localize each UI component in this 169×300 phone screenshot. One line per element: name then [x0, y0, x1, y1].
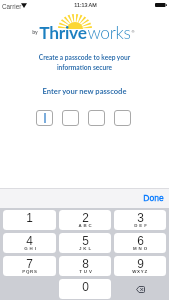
staticText: DEF: [134, 223, 149, 228]
staticText: ®: [131, 29, 135, 34]
staticText: Carrier: [2, 3, 22, 10]
staticText: 2: [82, 211, 89, 224]
staticText: works: [87, 22, 131, 43]
button[interactable]: 9: [114, 256, 166, 276]
staticText: Thrive: [39, 22, 87, 43]
button[interactable]: 2: [59, 210, 111, 230]
button[interactable]: Delete: [114, 279, 166, 299]
staticText: WXYZ: [132, 269, 148, 274]
staticText: PQRS: [22, 269, 38, 274]
staticText: MNO: [133, 246, 149, 251]
button[interactable]: [114, 110, 131, 126]
button[interactable]: 5: [59, 233, 111, 253]
button[interactable]: 0: [59, 279, 111, 299]
button[interactable]: [36, 110, 53, 126]
button[interactable]: 1: [3, 210, 56, 230]
button[interactable]: 7: [3, 256, 56, 276]
staticText: 5: [82, 234, 89, 247]
button[interactable]: 6: [114, 233, 166, 253]
button[interactable]: [88, 110, 105, 126]
staticText: 6: [137, 234, 144, 247]
staticText: by: [32, 29, 38, 35]
staticText: Create a passcode to keep your informati…: [0, 53, 169, 71]
staticText: GHI: [24, 246, 38, 251]
staticText: Enter your new passcode: [0, 86, 169, 95]
staticText: 8: [82, 257, 89, 270]
staticText: 1: [26, 211, 33, 224]
button[interactable]: 3: [114, 210, 166, 230]
staticText: TUV: [79, 269, 94, 274]
button[interactable]: 8: [59, 256, 111, 276]
button[interactable]: Done: [143, 193, 164, 202]
staticText: 3: [137, 211, 144, 224]
staticText: 0: [82, 280, 89, 293]
staticText: JKL: [79, 246, 93, 251]
staticText: 11:13 AM: [74, 2, 97, 8]
staticText: ABC: [78, 223, 94, 228]
staticText: 7: [26, 257, 33, 270]
staticText: 4: [26, 234, 33, 247]
button[interactable]: 4: [3, 233, 56, 253]
staticText: Done: [143, 193, 164, 202]
staticText: 9: [137, 257, 144, 270]
button[interactable]: [62, 110, 79, 126]
